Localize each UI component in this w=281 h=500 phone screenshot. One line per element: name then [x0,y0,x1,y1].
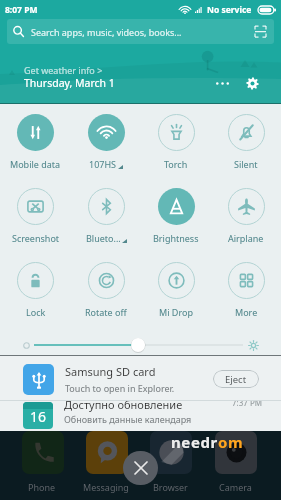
staticText: Phone [28,481,56,493]
other: Max brightness [248,340,259,351]
button[interactable]: Get weather info > [24,64,115,90]
button[interactable]: Mobile data [0,114,71,188]
button[interactable]: Phone [22,431,64,474]
button[interactable]: Settings [241,72,264,95]
staticText: Blueto... [86,232,121,244]
staticText: 8:07 PM [5,4,38,16]
staticText: Обновить данные календаря [64,413,192,425]
button[interactable]: 107HS [71,114,141,188]
staticText: Mobile data [10,158,61,170]
staticText: Search apps, music, videos, books... [31,26,182,38]
staticText: 7:37 PM [232,397,263,408]
staticText: Samsung SD card [65,364,156,379]
button[interactable]: Blueto... [71,188,141,262]
button[interactable]: Brightness [141,188,211,262]
button[interactable]: Camera [215,431,257,474]
staticText: needr [171,432,218,452]
staticText: No service [207,4,252,16]
button[interactable]: Messaging [86,431,128,474]
staticText: Eject [225,373,247,386]
staticText: Brightness [153,232,199,244]
button[interactable]: Screenshot [0,188,71,262]
button[interactable]: More [211,262,281,336]
button[interactable]: Eject [213,370,259,388]
button[interactable]: Search [7,19,274,44]
staticText: Lock [26,306,46,318]
staticText: Доступно обновление [64,397,183,412]
button[interactable] [34,337,243,353]
button[interactable]: 16 [0,397,281,429]
staticText: Rotate off [85,306,127,318]
staticText: Torch [164,158,188,170]
button[interactable]: Airplane [211,188,281,262]
button[interactable]: More options [210,72,234,95]
staticText: 16 [30,407,47,426]
button[interactable]: Rotate off [71,262,141,336]
staticText: 107HS [89,158,117,170]
staticText: om [218,432,244,452]
button[interactable]: Torch [141,114,211,188]
staticText: Silent [234,158,258,170]
staticText: Browser [153,481,188,493]
staticText: Airplane [228,232,264,244]
button[interactable]: Browser [150,431,192,474]
staticText: Get weather info > [24,64,103,76]
staticText: Mi Drop [159,306,193,318]
button[interactable]: Mi Drop [141,262,211,336]
button[interactable]: Silent [211,114,281,188]
button[interactable]: Close [123,451,158,485]
button[interactable]: Lock [0,262,71,336]
button[interactable]: Samsung SD card [0,355,281,401]
other: Search [12,25,25,38]
other: Scan code [255,26,266,37]
staticText: Touch to open in Explorer. [65,382,175,394]
staticText: More [235,306,258,318]
staticText: Messaging [83,481,129,493]
staticText: Thursday, March 1 [24,76,115,90]
staticText: Camera [219,481,252,493]
staticText: Screenshot [12,232,60,244]
